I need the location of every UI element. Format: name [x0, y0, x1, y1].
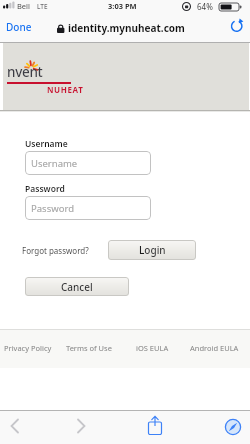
staticText: Android EULA — [190, 343, 239, 353]
staticText: iOS EULA — [136, 343, 169, 353]
button[interactable]: iOS EULA — [136, 343, 169, 353]
button[interactable] — [147, 415, 163, 437]
button[interactable]: Cancel — [25, 277, 129, 296]
staticText: NUHEAT — [47, 84, 84, 95]
staticText: Privacy Policy — [4, 343, 52, 353]
button[interactable]: Android EULA — [190, 343, 239, 353]
staticText: LTE — [37, 2, 48, 11]
staticText: nvent — [7, 63, 43, 81]
button[interactable]: Password — [25, 196, 151, 220]
button[interactable] — [8, 417, 24, 435]
button[interactable] — [224, 418, 242, 436]
staticText: Username — [25, 138, 68, 150]
button[interactable]: Terms of Use — [66, 343, 112, 353]
button[interactable] — [72, 417, 88, 435]
staticText: 3:03 PM — [108, 1, 137, 11]
button[interactable]: Login — [108, 240, 196, 260]
staticText: Done — [6, 20, 32, 34]
staticText: identity.mynuheat.com — [68, 21, 185, 35]
button[interactable]: Done — [6, 20, 32, 34]
staticText: Username — [31, 157, 78, 170]
staticText: Login — [139, 243, 166, 257]
staticText: Bell — [17, 1, 30, 11]
button[interactable]: Privacy Policy — [4, 343, 52, 353]
staticText: 64% — [197, 1, 213, 12]
staticText: Password — [31, 202, 74, 215]
button[interactable]: Username — [25, 151, 151, 175]
staticText: Forgot password? — [22, 245, 89, 256]
staticText: Terms of Use — [66, 343, 112, 353]
staticText: Password — [25, 183, 65, 195]
button[interactable] — [229, 18, 245, 34]
staticText: Cancel — [61, 280, 93, 294]
button[interactable]: Forgot password? — [22, 245, 89, 256]
